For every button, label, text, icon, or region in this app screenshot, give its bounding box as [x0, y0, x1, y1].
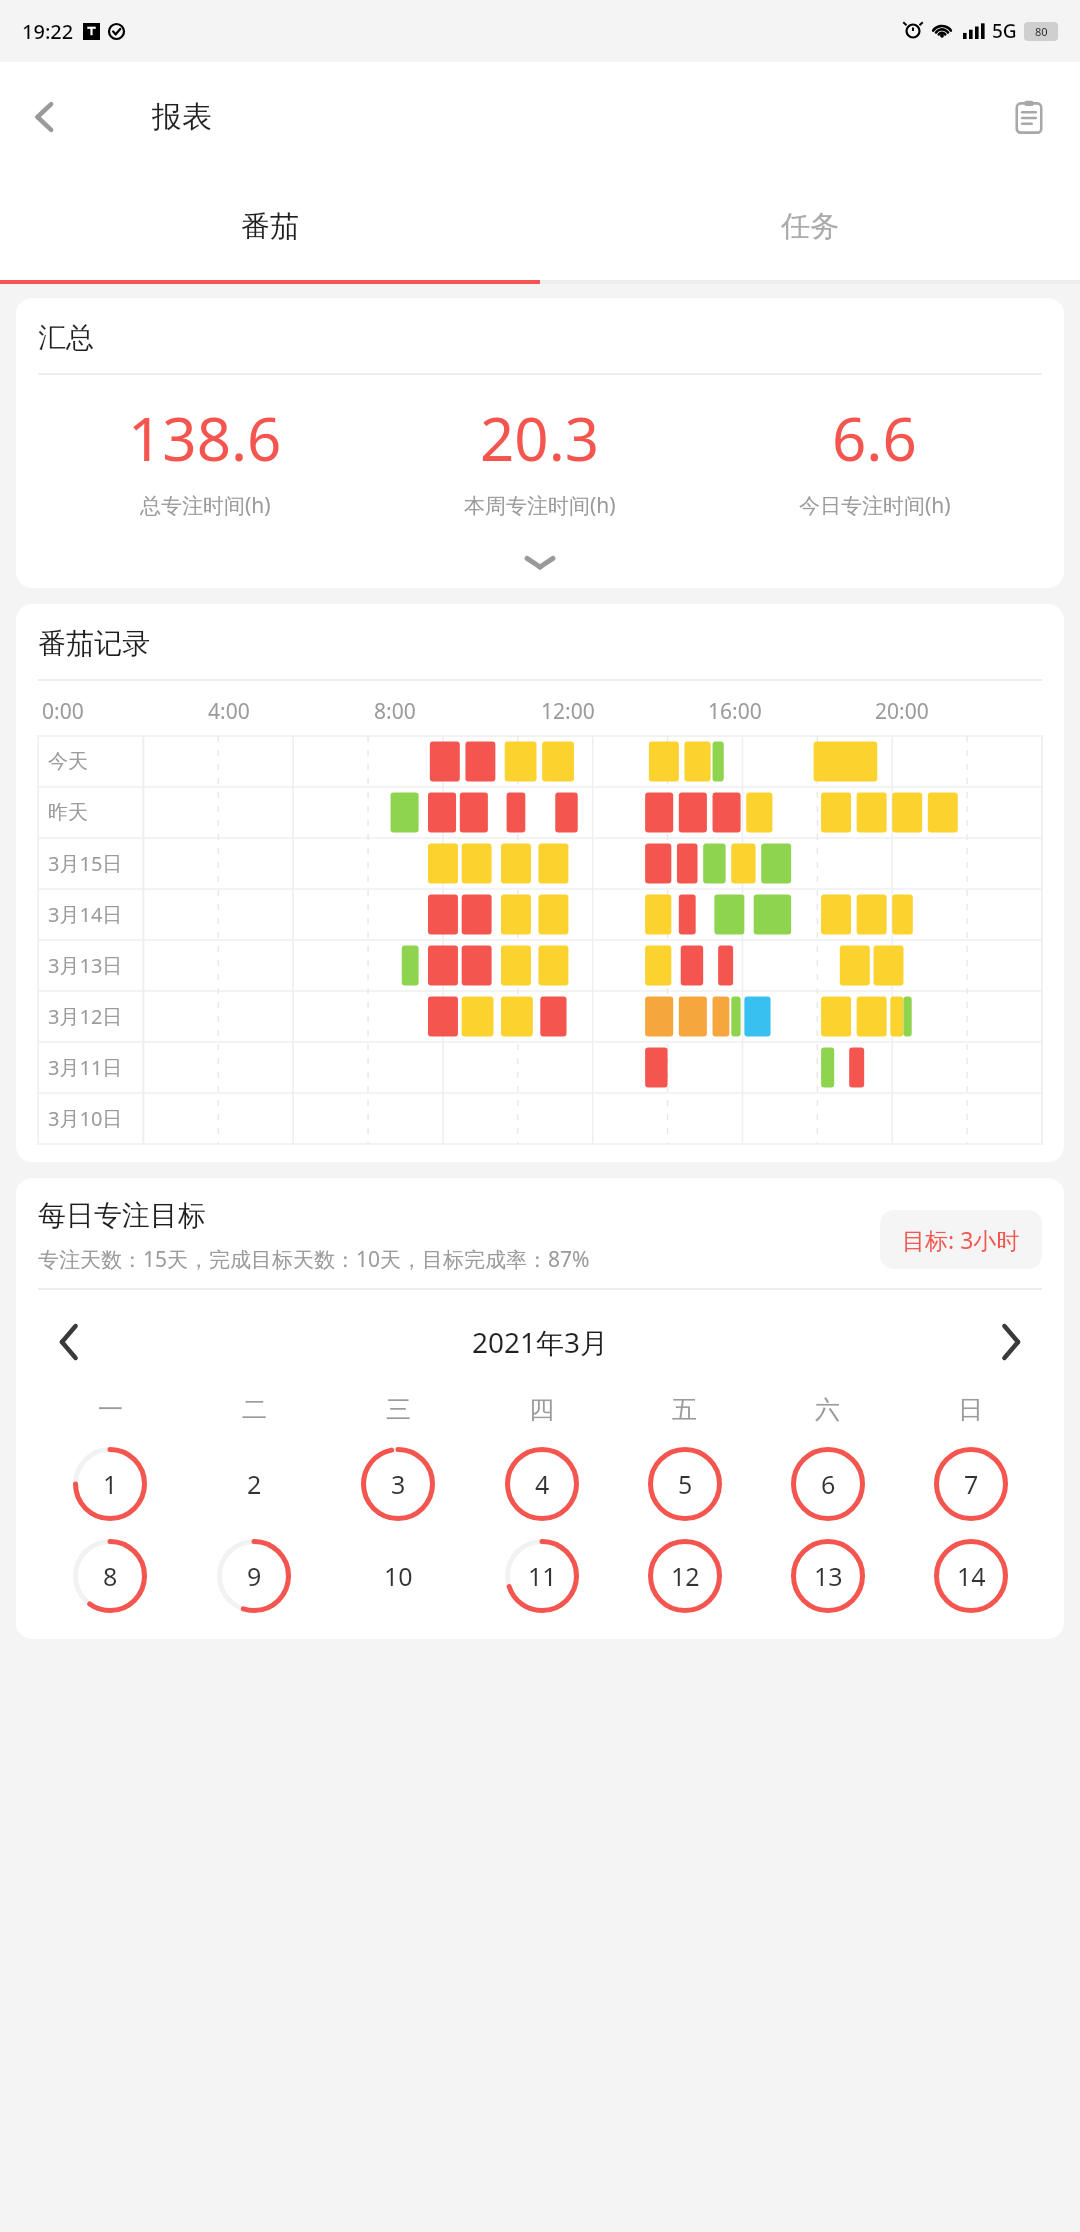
staticText: 5 — [678, 1467, 693, 1501]
staticText: 今日专注时间(h) — [799, 491, 951, 520]
staticText: 目标: 3小时 — [902, 1224, 1020, 1255]
staticText: 16:00 — [708, 697, 762, 726]
button[interactable]: 5 — [648, 1447, 722, 1521]
staticText: 3月12日 — [48, 1003, 123, 1030]
button[interactable]: Expand — [38, 542, 1042, 582]
staticText: 19:22 — [22, 18, 74, 45]
staticText: 13 — [814, 1559, 843, 1593]
staticText: 4 — [535, 1467, 550, 1501]
staticText: 1 — [103, 1467, 118, 1501]
staticText: 汇总 — [38, 320, 94, 355]
staticText: 12 — [671, 1559, 700, 1593]
button[interactable]: 13 — [791, 1539, 865, 1613]
button[interactable]: Next month — [980, 1311, 1042, 1373]
staticText: 8 — [103, 1559, 118, 1593]
button[interactable]: 2 — [217, 1447, 291, 1521]
staticText: 番茄记录 — [38, 626, 150, 661]
staticText: 总专注时间(h) — [140, 491, 271, 520]
button[interactable]: 11 — [505, 1539, 579, 1613]
staticText: 番茄 — [241, 208, 299, 245]
button[interactable]: 任务 — [540, 172, 1080, 280]
staticText: 六 — [815, 1394, 840, 1425]
staticText: 12:00 — [541, 697, 595, 726]
staticText: 报表 — [152, 98, 212, 136]
staticText: 4:00 — [208, 697, 250, 726]
staticText: 每日专注目标 — [38, 1198, 206, 1233]
button[interactable]: Back — [14, 86, 76, 148]
button[interactable]: 4 — [505, 1447, 579, 1521]
staticText: 2 — [247, 1467, 262, 1501]
staticText: 3 — [391, 1467, 406, 1501]
staticText: 3月15日 — [48, 850, 123, 877]
staticText: 7 — [964, 1467, 979, 1501]
staticText: 3月13日 — [48, 952, 123, 979]
staticText: 0:00 — [42, 697, 84, 726]
staticText: 9 — [247, 1559, 262, 1593]
staticText: 本周专注时间(h) — [464, 491, 616, 520]
staticText: 6.6 — [832, 397, 917, 479]
button[interactable]: 10 — [361, 1539, 435, 1613]
button[interactable]: 8 — [73, 1539, 147, 1613]
staticText: 20.3 — [480, 397, 600, 479]
staticText: 3月11日 — [48, 1054, 123, 1081]
button[interactable]: 9 — [217, 1539, 291, 1613]
staticText: 3月14日 — [48, 901, 123, 928]
button[interactable]: 番茄 — [0, 172, 540, 280]
staticText: 80 — [1035, 24, 1048, 39]
staticText: 20:00 — [875, 697, 929, 726]
staticText: 五 — [672, 1394, 697, 1425]
staticText: 11 — [528, 1559, 557, 1593]
button[interactable]: 6 — [791, 1447, 865, 1521]
staticText: 6 — [821, 1467, 836, 1501]
staticText: 专注天数：15天，完成目标天数：10天，目标完成率：87% — [38, 1245, 590, 1274]
staticText: 5G — [992, 18, 1017, 44]
staticText: 138.6 — [128, 397, 282, 479]
button[interactable]: 目标: 3小时 — [880, 1210, 1042, 1269]
staticText: 2021年3月 — [472, 1323, 609, 1361]
button[interactable]: 7 — [934, 1447, 1008, 1521]
staticText: 3月10日 — [48, 1105, 123, 1132]
staticText: 任务 — [781, 208, 839, 245]
staticText: 8:00 — [374, 697, 416, 726]
button[interactable]: 3 — [361, 1447, 435, 1521]
staticText: 10 — [384, 1559, 413, 1593]
staticText: 日 — [958, 1394, 983, 1425]
staticText: 昨天 — [48, 800, 88, 825]
staticText: 三 — [386, 1394, 411, 1425]
button[interactable]: 1 — [73, 1447, 147, 1521]
staticText: 今天 — [48, 749, 88, 774]
button[interactable]: Records — [998, 86, 1060, 148]
button[interactable]: 12 — [648, 1539, 722, 1613]
button[interactable]: 14 — [934, 1539, 1008, 1613]
button[interactable]: Previous month — [38, 1311, 100, 1373]
staticText: 四 — [529, 1394, 554, 1425]
staticText: 二 — [242, 1394, 267, 1425]
staticText: 一 — [98, 1394, 123, 1425]
staticText: 14 — [957, 1559, 986, 1593]
